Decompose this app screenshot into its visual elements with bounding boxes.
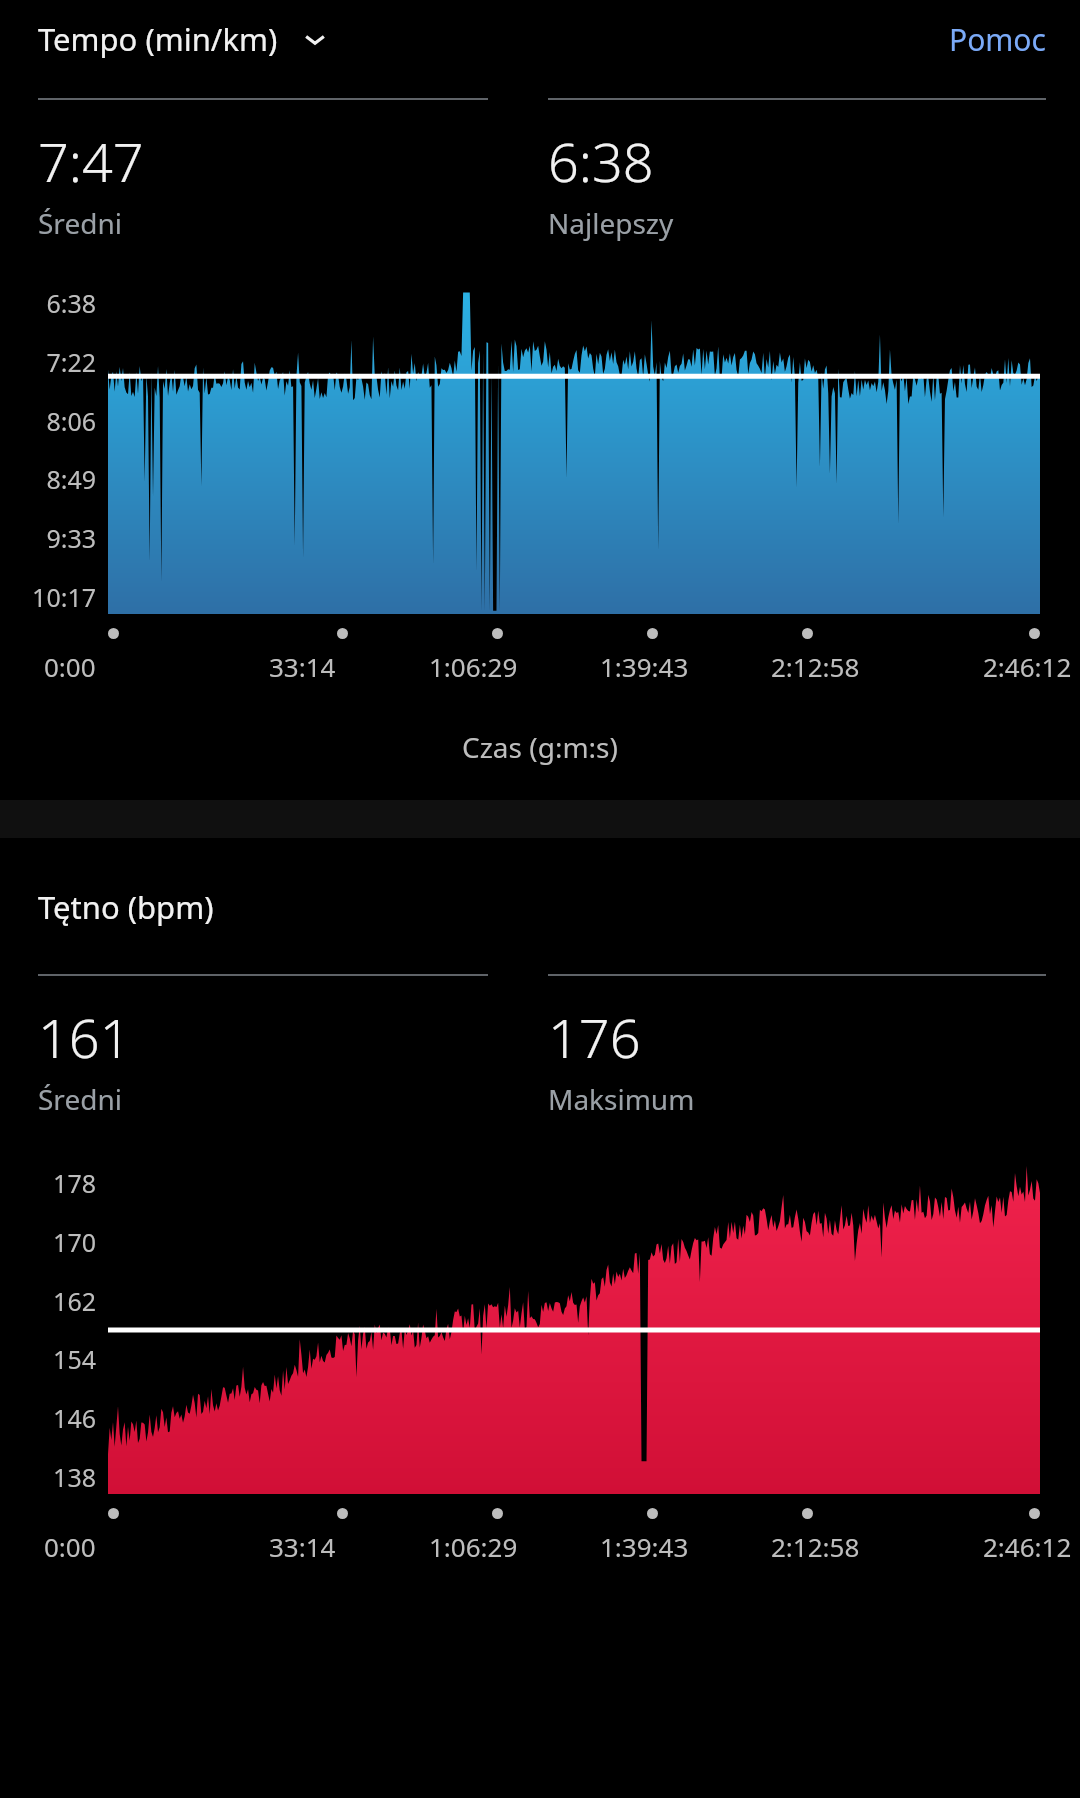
staticText: 33:14 [269, 649, 336, 684]
staticText: 7:22 [46, 345, 96, 379]
staticText: Średni [38, 204, 122, 242]
staticText: 146 [53, 1401, 96, 1435]
staticText: 10:17 [32, 580, 96, 614]
staticText: 8:49 [46, 462, 96, 496]
staticText: 2:46:12 [983, 1529, 1072, 1564]
staticText: 2:12:58 [771, 649, 860, 684]
staticText: 161 [38, 1000, 131, 1074]
staticText: Najlepszy [548, 204, 674, 242]
staticText: 6:38 [46, 286, 96, 320]
button[interactable]: 7:47 [38, 98, 488, 242]
staticText: Tempo (min/km) [38, 18, 278, 60]
staticText: 1:06:29 [429, 1529, 518, 1564]
staticText: 178 [53, 1166, 96, 1200]
button[interactable]: Pomoc [949, 19, 1046, 60]
staticText: Pomoc [949, 19, 1046, 60]
staticText: 1:06:29 [429, 649, 518, 684]
staticText: 162 [53, 1284, 96, 1318]
staticText: 33:14 [269, 1529, 336, 1564]
staticText: 6:38 [548, 124, 654, 198]
staticText: Czas (g:m:s) [462, 728, 618, 766]
staticText: 138 [53, 1460, 96, 1494]
staticText: 176 [548, 1000, 641, 1074]
staticText: 0:00 [44, 649, 96, 684]
staticText: 154 [53, 1342, 96, 1376]
staticText: 2:46:12 [983, 649, 1072, 684]
button[interactable]: Tempo (min/km) [38, 18, 328, 60]
staticText: 0:00 [44, 1529, 96, 1564]
button[interactable] [108, 1166, 1040, 1494]
staticText: Tętno (bpm) [38, 886, 214, 928]
staticText: 8:06 [46, 404, 96, 438]
staticText: 170 [53, 1225, 96, 1259]
staticText: 7:47 [38, 124, 144, 198]
button[interactable]: 176 [548, 974, 1046, 1118]
button[interactable]: 161 [38, 974, 488, 1118]
staticText: Średni [38, 1080, 122, 1118]
button[interactable] [108, 286, 1040, 614]
staticText: 9:33 [46, 521, 96, 555]
button[interactable]: 6:38 [548, 98, 1046, 242]
staticText: 1:39:43 [600, 649, 689, 684]
staticText: Maksimum [548, 1080, 695, 1118]
staticText: 2:12:58 [771, 1529, 860, 1564]
staticText: 1:39:43 [600, 1529, 689, 1564]
